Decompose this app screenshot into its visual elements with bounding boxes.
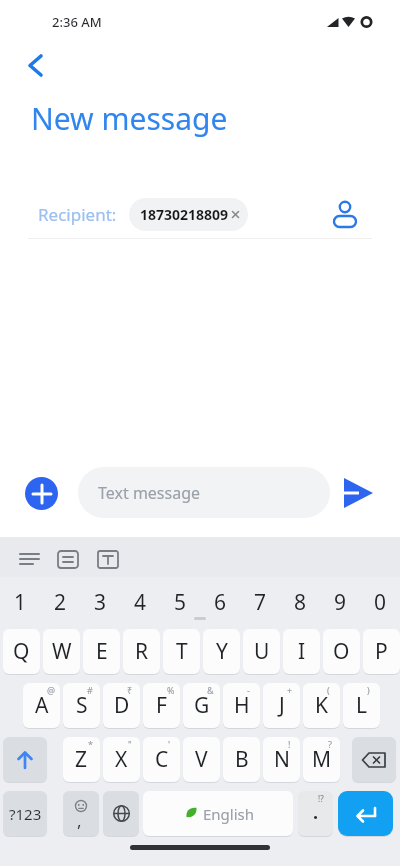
button[interactable]: B	[223, 737, 260, 782]
button[interactable]: ,	[63, 791, 99, 836]
button[interactable]	[328, 192, 362, 236]
staticText: !	[288, 738, 291, 750]
button[interactable]	[338, 791, 393, 836]
staticText: M	[312, 745, 332, 774]
staticText: 2:36 AM	[52, 13, 102, 31]
button[interactable]: 9	[320, 583, 360, 621]
staticText: @	[47, 684, 56, 696]
staticText: "	[128, 738, 132, 750]
staticText: #	[87, 684, 93, 696]
staticText: 9	[334, 588, 347, 617]
button[interactable]: S	[63, 683, 100, 728]
button[interactable]: 5	[160, 583, 200, 621]
button[interactable]: 7	[240, 583, 280, 621]
button[interactable]: 8	[280, 583, 320, 621]
staticText: +	[287, 684, 293, 696]
staticText: N	[274, 745, 290, 774]
button[interactable]	[103, 791, 139, 836]
staticText: Z	[75, 745, 88, 774]
staticText: )	[367, 684, 370, 696]
button[interactable]: L	[343, 683, 380, 728]
button[interactable]: Text message	[78, 467, 330, 518]
button[interactable]: U	[243, 629, 280, 674]
button[interactable]: 3	[80, 583, 120, 621]
staticText: New message	[31, 98, 228, 139]
staticText: '	[168, 738, 171, 750]
staticText: C	[155, 745, 169, 774]
staticText: 5	[174, 588, 187, 617]
button[interactable]: K	[303, 683, 340, 728]
button[interactable]: G	[183, 683, 220, 728]
staticText: Text message	[98, 482, 201, 504]
staticText: 7	[254, 588, 267, 617]
staticText: L	[356, 691, 368, 720]
staticText: *	[88, 738, 93, 750]
staticText: 2	[54, 588, 67, 617]
button[interactable]	[340, 474, 378, 512]
staticText: ₹	[127, 684, 133, 696]
staticText: O	[333, 637, 350, 666]
button[interactable]: 1	[0, 583, 40, 621]
staticText: (	[327, 684, 330, 696]
staticText: H	[234, 691, 250, 720]
button[interactable]: M	[303, 737, 340, 782]
staticText: Y	[216, 637, 228, 666]
button[interactable]	[14, 546, 46, 572]
button[interactable]: P	[363, 629, 400, 674]
button[interactable]: N	[263, 737, 300, 782]
button[interactable]: R	[123, 629, 160, 674]
button[interactable]: D	[103, 683, 140, 728]
staticText: 0	[374, 588, 387, 617]
button[interactable]: E	[83, 629, 120, 674]
staticText: I	[298, 637, 306, 666]
button[interactable]: 0	[360, 583, 400, 621]
staticText: 8	[294, 588, 307, 617]
button[interactable]: Y	[203, 629, 240, 674]
staticText: English	[203, 804, 255, 824]
staticText: ?	[328, 738, 332, 750]
button[interactable]: Z	[63, 737, 100, 782]
staticText: U	[254, 637, 270, 666]
staticText: 6	[214, 588, 227, 617]
staticText: -	[247, 684, 250, 696]
button[interactable]: X	[103, 737, 140, 782]
button[interactable]: F	[143, 683, 180, 728]
button[interactable]: A	[23, 683, 60, 728]
staticText: S	[76, 691, 88, 720]
button[interactable]: ?123	[3, 791, 47, 836]
staticText: W	[52, 637, 72, 666]
staticText: .	[313, 800, 319, 825]
button[interactable]	[94, 546, 126, 572]
button[interactable]	[3, 737, 47, 782]
button[interactable]: 4	[120, 583, 160, 621]
staticText: ,	[77, 809, 82, 832]
button[interactable]: J	[263, 683, 300, 728]
staticText: A	[35, 691, 49, 720]
staticText: P	[375, 637, 388, 666]
button[interactable]: T	[163, 629, 200, 674]
staticText: V	[195, 745, 208, 774]
staticText: T	[176, 637, 188, 666]
button[interactable]: 18730218809	[129, 198, 248, 231]
button[interactable]: .	[298, 791, 333, 836]
button[interactable]	[16, 46, 60, 86]
button[interactable]: W	[43, 629, 80, 674]
staticText: ?123	[9, 804, 42, 824]
button[interactable]	[54, 546, 86, 572]
button[interactable]: H	[223, 683, 260, 728]
button[interactable]: 2	[40, 583, 80, 621]
button[interactable]: English	[143, 791, 293, 836]
button[interactable]: O	[323, 629, 360, 674]
button[interactable]: 6	[200, 583, 240, 621]
button[interactable]: I	[283, 629, 320, 674]
button[interactable]	[25, 477, 58, 510]
staticText: D	[114, 691, 130, 720]
staticText: B	[235, 745, 249, 774]
staticText: 3	[94, 588, 107, 617]
button[interactable]: Q	[3, 629, 40, 674]
button[interactable]	[352, 737, 396, 782]
button[interactable]: C	[143, 737, 180, 782]
staticText: E	[96, 637, 108, 666]
staticText: %	[167, 684, 175, 696]
button[interactable]: V	[183, 737, 220, 782]
